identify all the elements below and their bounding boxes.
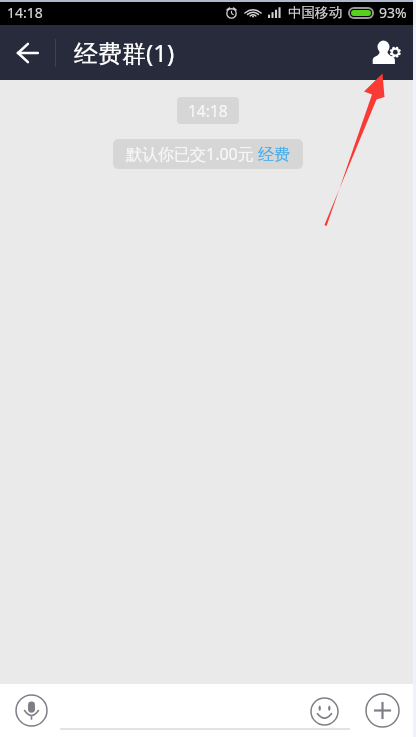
button[interactable]: Group settings	[360, 25, 416, 80]
staticText: 93%	[379, 3, 407, 22]
staticText: 中国移动	[288, 4, 342, 21]
staticText: 经费群(1)	[74, 36, 175, 69]
button[interactable]: Back	[0, 26, 54, 80]
button[interactable]: Voice message	[15, 694, 48, 727]
staticText: 默认你已交1.00元 经费	[126, 143, 290, 165]
button[interactable]: Emoji	[309, 696, 339, 726]
staticText: 14:18	[7, 3, 43, 22]
staticText: 14:18	[188, 100, 228, 121]
button[interactable]: More	[365, 693, 400, 728]
